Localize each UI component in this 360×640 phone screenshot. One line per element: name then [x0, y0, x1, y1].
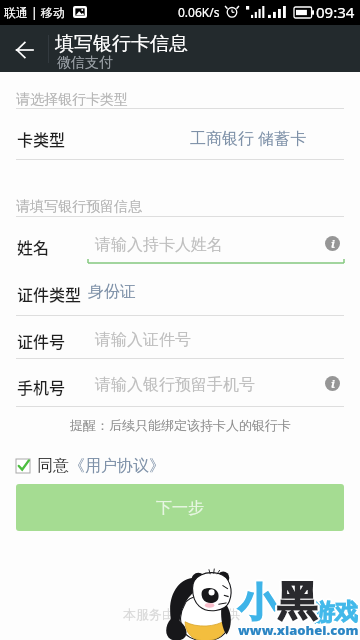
staticText: 黑 [277, 576, 317, 626]
staticText: 小 [240, 578, 279, 627]
staticText: 黑 [278, 575, 318, 625]
staticText: 提醒：后续只能绑定该持卡人的银行卡 [70, 417, 291, 433]
staticText: 下一步 [156, 498, 204, 518]
staticText: 请输入证件号 [95, 330, 191, 350]
staticText: 黑 [275, 576, 315, 626]
staticText: 小 [238, 578, 277, 627]
staticText: 游戏 [312, 596, 358, 625]
staticText: www.xiaohei.com [238, 620, 359, 638]
staticText: 游戏 [313, 597, 359, 626]
staticText: 游戏 [312, 598, 358, 627]
staticText: 卡类型 [17, 127, 66, 150]
staticText: 姓名 [17, 235, 50, 258]
staticText: 小 [237, 579, 276, 628]
staticText: 黑 [277, 574, 317, 624]
staticText: 游戏 [312, 599, 358, 628]
staticText: 小 [238, 579, 277, 628]
staticText: 身份证 [88, 282, 136, 302]
staticText: 请选择银行卡类型 [16, 91, 128, 109]
staticText: 游戏 [312, 598, 358, 627]
staticText: 黑 [279, 576, 319, 626]
staticText: 请输入持卡人姓名 [95, 235, 223, 255]
staticText: 游戏 [312, 597, 358, 626]
staticText: www.xiaohei.com [239, 621, 360, 639]
button[interactable]: Info [325, 376, 340, 391]
staticText: 游戏 [314, 598, 360, 627]
staticText: 同意 [37, 456, 69, 476]
staticText: www.xiaohei.com [238, 621, 359, 639]
staticText: 黑 [276, 575, 316, 625]
staticText: 小 [237, 578, 276, 627]
staticText: 游戏 [311, 599, 357, 628]
staticText: 09:34 [316, 2, 355, 22]
button[interactable]: Info [325, 236, 340, 251]
staticText: 小 [238, 578, 277, 627]
button[interactable]: 下一步 [16, 484, 344, 531]
staticText: 黑 [278, 577, 318, 627]
staticText: 小 [239, 577, 278, 626]
staticText: 游戏 [312, 600, 358, 629]
staticText: i [331, 376, 335, 391]
staticText: 小 [239, 578, 278, 627]
staticText: 证件类型 [17, 282, 82, 305]
staticText: 小 [237, 577, 276, 626]
button[interactable]: Back [0, 25, 48, 72]
staticText: 黑 [278, 576, 318, 626]
staticText: 小 [238, 580, 277, 629]
staticText: 黑 [277, 578, 317, 628]
staticText: 黑 [276, 577, 316, 627]
staticText: 小 [236, 578, 275, 627]
staticText: 本服务由财付通提供 [123, 606, 240, 622]
staticText: 黑 [277, 577, 317, 627]
staticText: 游戏 [313, 599, 359, 628]
staticText: 游戏 [311, 597, 357, 626]
staticText: 游戏 [310, 598, 356, 627]
staticText: www.xiaohei.com [237, 621, 358, 639]
staticText: 0.06K/s [178, 4, 220, 20]
staticText: 《用户协议》 [69, 456, 165, 476]
staticText: 小 [238, 576, 277, 625]
staticText: 工商银行 储蓄卡 [190, 127, 307, 149]
staticText: 请填写银行预留信息 [16, 198, 142, 216]
staticText: i [331, 236, 335, 251]
staticText: 小 [238, 577, 277, 626]
staticText: 黑 [276, 576, 316, 626]
staticText: 证件号 [17, 329, 66, 352]
staticText: 手机号 [17, 375, 66, 398]
staticText: 请输入银行预留手机号 [95, 375, 255, 395]
staticText: 联通 | 移动 [4, 4, 65, 20]
staticText: 黑 [277, 576, 317, 626]
staticText: www.xiaohei.com [238, 622, 359, 640]
staticText: 游戏 [313, 598, 359, 627]
staticText: 游戏 [311, 598, 357, 627]
staticText: www.xiaohei.com [238, 621, 359, 639]
staticText: 填写银行卡信息 [55, 32, 188, 56]
button[interactable]: 同意 [16, 456, 165, 476]
staticText: 黑 [277, 575, 317, 625]
staticText: 微信支付 [57, 54, 113, 72]
staticText: 小 [239, 579, 278, 628]
